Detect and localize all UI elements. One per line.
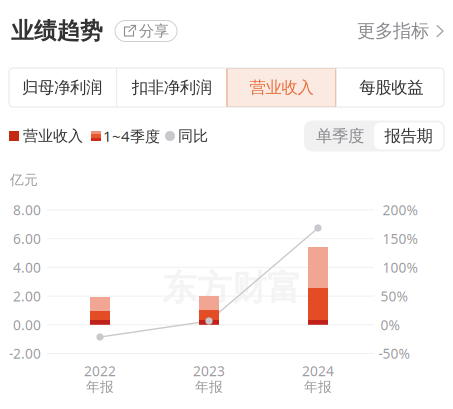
staticText: 东方财富 bbox=[162, 267, 302, 309]
staticText: 年报 bbox=[195, 378, 223, 396]
button[interactable]: 报告期 bbox=[374, 122, 443, 149]
staticText: -2.00 bbox=[9, 344, 41, 363]
button[interactable]: 单季度 bbox=[306, 122, 374, 149]
staticText: 更多指标 bbox=[357, 19, 429, 42]
staticText: 100% bbox=[382, 258, 417, 277]
button[interactable]: 扣非净利润 bbox=[117, 68, 226, 107]
button[interactable]: 每股收益 bbox=[337, 68, 446, 107]
staticText: 营业收入 bbox=[23, 126, 83, 145]
button[interactable]: 分享 bbox=[115, 20, 177, 41]
staticText: 营业收入 bbox=[249, 77, 313, 98]
staticText: 0% bbox=[380, 315, 399, 334]
staticText: 50% bbox=[380, 287, 407, 305]
staticText: 200% bbox=[382, 201, 417, 219]
button[interactable]: 营业收入 bbox=[227, 68, 336, 107]
staticText: 4.00 bbox=[13, 258, 41, 277]
staticText: 每股收益 bbox=[359, 77, 423, 98]
staticText: 8.00 bbox=[13, 201, 41, 219]
staticText: 报告期 bbox=[384, 126, 432, 146]
staticText: 同比 bbox=[178, 126, 208, 145]
staticText: 150% bbox=[382, 229, 417, 248]
button[interactable]: 归母净利润 bbox=[7, 68, 116, 107]
staticText: 分享 bbox=[139, 21, 169, 40]
staticText: 年报 bbox=[86, 378, 114, 396]
staticText: -50% bbox=[378, 344, 409, 363]
staticText: 年报 bbox=[304, 378, 332, 396]
staticText: 2022 bbox=[84, 362, 116, 380]
staticText: 2024 bbox=[302, 362, 334, 380]
staticText: 2023 bbox=[193, 362, 225, 380]
staticText: 扣非净利润 bbox=[132, 77, 212, 98]
staticText: 亿元 bbox=[10, 171, 38, 189]
staticText: 6.00 bbox=[13, 229, 41, 248]
staticText: 单季度 bbox=[316, 126, 364, 146]
staticText: 归母净利润 bbox=[22, 77, 102, 98]
staticText: 2.00 bbox=[13, 287, 41, 305]
staticText: 0.00 bbox=[13, 315, 41, 334]
staticText: 业绩趋势 bbox=[11, 17, 103, 45]
staticText: 1~4季度 bbox=[103, 126, 160, 146]
button[interactable]: 更多指标 bbox=[357, 19, 444, 42]
